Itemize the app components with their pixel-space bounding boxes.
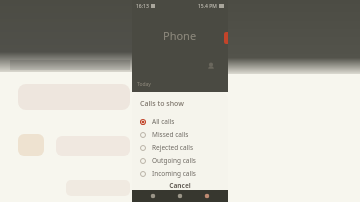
staticText: 15.4 PM <box>198 3 217 10</box>
button[interactable]: Recents <box>174 190 186 202</box>
button[interactable]: Missed calls <box>132 128 228 141</box>
button[interactable]: Outgoing calls <box>132 154 228 167</box>
staticText: All calls <box>152 117 175 126</box>
staticText: Outgoing calls <box>152 156 196 165</box>
button[interactable]: Cancel <box>132 180 228 190</box>
staticText: Rejected calls <box>152 143 194 152</box>
staticText: Phone <box>163 28 197 43</box>
button[interactable]: Rejected calls <box>132 141 228 154</box>
button[interactable]: Contacts <box>201 190 213 202</box>
staticText: Incoming calls <box>152 169 196 178</box>
staticText: Cancel <box>169 181 191 190</box>
staticText: 16:13 <box>136 3 149 10</box>
staticText: Today <box>137 81 151 88</box>
staticText: Calls to show <box>140 99 184 109</box>
button[interactable]: Incoming calls <box>132 167 228 180</box>
button[interactable]: Keypad <box>147 190 159 202</box>
staticText: Missed calls <box>152 130 189 139</box>
button[interactable]: All calls <box>132 115 228 128</box>
